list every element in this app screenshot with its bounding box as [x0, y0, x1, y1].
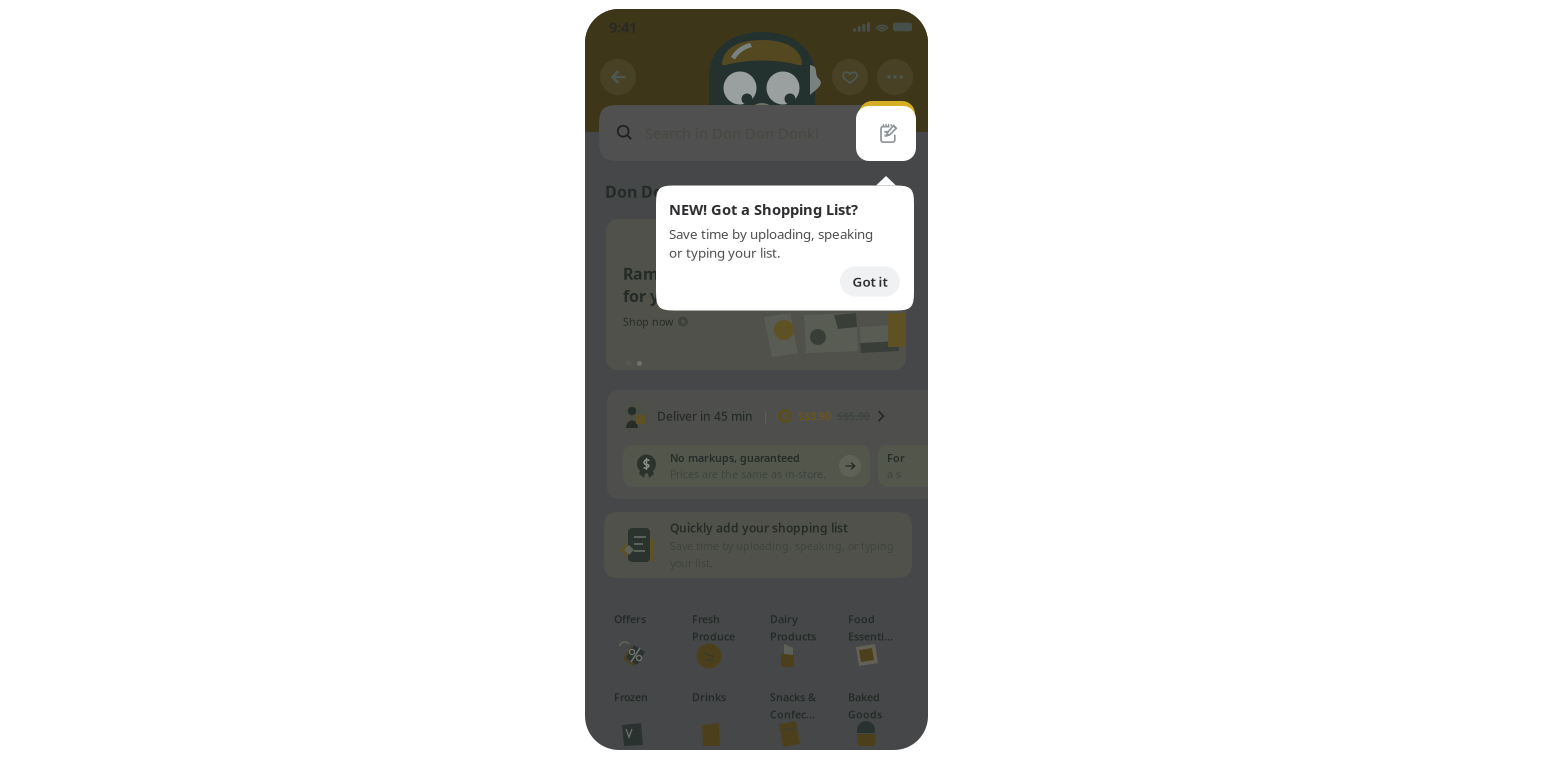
button[interactable]: Baked [848, 690, 926, 758]
staticText: Dairy [770, 612, 798, 626]
button[interactable]: Food [848, 612, 926, 690]
staticText: Got it [852, 273, 887, 290]
staticText: your list. [670, 556, 713, 570]
staticText: Save time by uploading, speaking [669, 225, 873, 243]
staticText: S$5.90 [837, 409, 870, 423]
staticText: Prices are the same as in-store. [670, 467, 826, 481]
button[interactable]: More options [877, 59, 913, 95]
staticText: Fresh [692, 612, 720, 626]
staticText: For [887, 451, 905, 465]
staticText: Quickly add your shopping list [670, 520, 848, 536]
staticText: Essenti... [848, 629, 893, 643]
staticText: No markups, guaranteed [670, 451, 800, 465]
staticText: Drinks [692, 690, 726, 704]
staticText: Ramen deals [623, 263, 726, 284]
button[interactable]: Drinks [692, 690, 770, 758]
staticText: Baked [848, 690, 880, 704]
button[interactable]: Offers [614, 612, 692, 690]
staticText: Search in Don Don Donki [645, 123, 819, 143]
staticText: Frozen [614, 690, 648, 704]
button[interactable]: Favourite [832, 59, 868, 95]
staticText: Don Don Donki [605, 181, 724, 202]
button[interactable]: Quickly add your shopping list [604, 512, 912, 578]
staticText: Shop now [623, 314, 673, 329]
button[interactable]: Add shopping list [856, 106, 916, 161]
button[interactable]: Dairy [770, 612, 848, 690]
button[interactable]: Back [600, 59, 636, 95]
staticText: NEW! Got a Shopping List? [669, 199, 858, 219]
button[interactable]: Got it [840, 266, 900, 296]
button[interactable]: Fresh [692, 612, 770, 690]
staticText: for you [623, 285, 679, 306]
staticText: 9:41 [609, 17, 637, 37]
staticText: or typing your list. [669, 244, 781, 261]
button[interactable]: Search in Don Don Donki [599, 105, 911, 161]
staticText: Food [848, 612, 875, 626]
staticText: Products [770, 629, 816, 643]
staticText: Save time by uploading, speaking, or typ… [670, 539, 894, 553]
staticText: Goods [848, 707, 882, 721]
staticText: Deliver in 45 min [657, 408, 753, 424]
staticText: a s [887, 467, 901, 481]
staticText: | [762, 407, 769, 425]
staticText: Snacks & [770, 690, 816, 704]
staticText: Produce [692, 629, 735, 643]
staticText: S$3.90 [798, 409, 831, 423]
button[interactable]: Frozen [614, 690, 692, 758]
staticText: Confec... [770, 707, 815, 721]
staticText: Offers [614, 612, 646, 626]
button[interactable]: Snacks & [770, 690, 848, 758]
